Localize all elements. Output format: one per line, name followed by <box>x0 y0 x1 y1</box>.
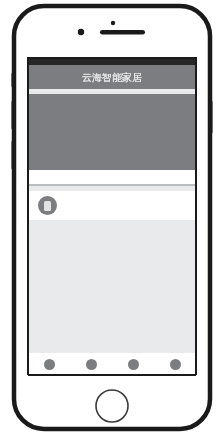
button[interactable]: 设备 <box>70 353 112 375</box>
button[interactable]: 首页 <box>28 353 70 375</box>
staticText: 云海智能家居 <box>82 71 142 84</box>
button[interactable]: 设备 <box>29 191 195 220</box>
button[interactable]: 我的 <box>154 353 196 375</box>
button[interactable]: 场景 <box>112 353 154 375</box>
button[interactable] <box>29 94 195 184</box>
